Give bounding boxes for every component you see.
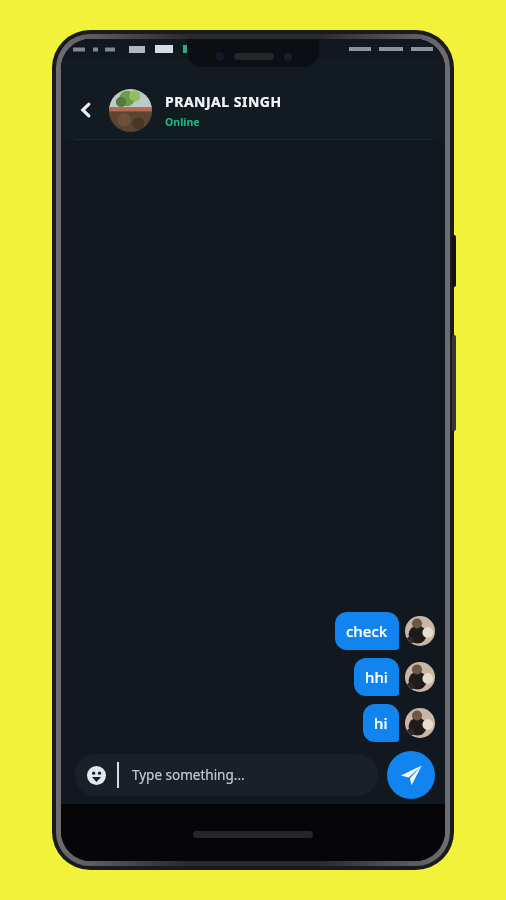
staticText: hi	[374, 713, 388, 733]
button[interactable]: hi	[363, 704, 435, 742]
button[interactable]: Type something...	[75, 754, 378, 796]
button[interactable]: check	[335, 612, 435, 650]
button[interactable]: Back	[67, 91, 105, 129]
button[interactable]: Profile photo	[109, 89, 152, 132]
button[interactable]: Send	[387, 751, 435, 799]
button[interactable]: hhi	[354, 658, 435, 696]
staticText: Type something...	[132, 766, 245, 784]
staticText: check	[346, 621, 388, 641]
staticText: PRANJAL SINGH	[165, 92, 282, 111]
staticText: Online	[165, 115, 200, 129]
staticText: hhi	[365, 667, 388, 687]
